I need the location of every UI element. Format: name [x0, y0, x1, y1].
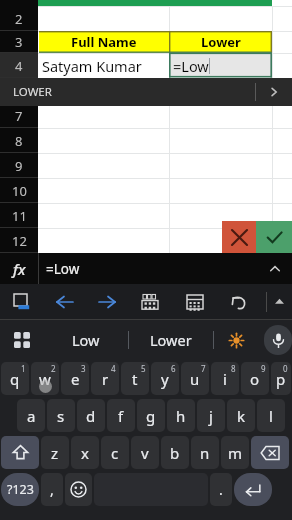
button[interactable]: 4	[0, 53, 38, 78]
button[interactable]: Enter	[234, 473, 272, 506]
staticText: ?123	[7, 481, 34, 498]
button[interactable]: d	[77, 399, 105, 432]
button[interactable]: Emoji	[65, 473, 92, 506]
staticText: g	[146, 406, 156, 426]
button[interactable]: a	[17, 399, 45, 432]
staticText: s	[57, 406, 65, 426]
button[interactable]: LOWER	[0, 78, 292, 106]
button[interactable]: Backspace	[251, 436, 289, 469]
staticText: p	[276, 369, 286, 389]
button[interactable]: Expand formula bar	[258, 253, 292, 284]
staticText: Satyam Kumar	[42, 56, 142, 76]
button[interactable]: Period	[210, 473, 232, 506]
button[interactable]: e	[61, 362, 89, 395]
button[interactable]: Lower	[129, 320, 213, 360]
button[interactable]: v	[131, 436, 159, 469]
button[interactable]: Previous	[44, 284, 86, 319]
staticText: b	[170, 443, 180, 463]
staticText: o	[250, 369, 260, 389]
button[interactable]: Satyam Kumar	[39, 54, 169, 77]
button[interactable]: Voice input	[264, 325, 292, 355]
staticText: 9	[15, 157, 23, 175]
staticText: Low	[72, 330, 100, 350]
button[interactable]: Low	[44, 320, 128, 360]
staticText: Lower	[150, 330, 192, 350]
staticText: 4	[15, 57, 23, 75]
button[interactable]: Full Name	[39, 32, 169, 52]
button[interactable]: k	[227, 399, 255, 432]
staticText: 1	[21, 363, 26, 374]
button[interactable]: 5	[0, 78, 38, 103]
button[interactable]: Confirm	[256, 221, 292, 253]
button[interactable]: g	[137, 399, 165, 432]
button[interactable]: l	[257, 399, 285, 432]
button[interactable]: y	[151, 362, 179, 395]
staticText: 12	[12, 232, 27, 250]
button[interactable]: t	[121, 362, 149, 395]
staticText: n	[200, 443, 210, 463]
button[interactable]: Cancel	[222, 221, 256, 253]
button[interactable]: Comma	[41, 473, 63, 506]
staticText: f	[118, 406, 124, 426]
button[interactable]: 7	[0, 103, 38, 128]
button[interactable]: j	[197, 399, 225, 432]
staticText: LOWER	[13, 84, 52, 100]
staticText: .	[219, 480, 223, 499]
button[interactable]: ?123	[1, 473, 39, 506]
staticText: t	[132, 369, 138, 389]
staticText: =Low	[46, 260, 80, 278]
button[interactable]: Undo	[218, 284, 262, 319]
button[interactable]: x	[71, 436, 99, 469]
button[interactable]: Date	[172, 284, 218, 319]
button[interactable]: Toggle keyboard	[0, 284, 44, 319]
staticText: d	[86, 406, 96, 426]
button[interactable]: Settings	[214, 320, 258, 360]
button[interactable]: p	[271, 362, 291, 395]
staticText: 7	[15, 107, 23, 125]
staticText: =Low	[173, 56, 209, 76]
button[interactable]: m	[221, 436, 249, 469]
staticText: w	[39, 369, 51, 389]
button[interactable]: 2	[0, 6, 38, 31]
button[interactable]: h	[167, 399, 195, 432]
staticText: Full Name	[71, 33, 137, 51]
staticText: l	[269, 406, 273, 426]
button[interactable]: 12	[0, 228, 38, 253]
button[interactable]: i	[211, 362, 239, 395]
button[interactable]: Lower	[170, 32, 272, 52]
staticText: q	[10, 369, 20, 389]
button[interactable]: Number pad	[128, 284, 172, 319]
button[interactable]: o	[241, 362, 269, 395]
button[interactable]: Clipboard	[0, 320, 44, 360]
button[interactable]: 11	[0, 203, 38, 228]
button[interactable]: 8	[0, 128, 38, 153]
staticText: u	[190, 369, 200, 389]
button[interactable]: b	[161, 436, 189, 469]
button[interactable]: q	[1, 362, 29, 395]
button[interactable]: 10	[0, 178, 38, 203]
button[interactable]: 3	[0, 31, 38, 53]
button[interactable]: Collapse	[267, 284, 292, 319]
button[interactable]: n	[191, 436, 219, 469]
button[interactable]: u	[181, 362, 209, 395]
button[interactable]: Next	[86, 284, 128, 319]
button[interactable]: c	[101, 436, 129, 469]
button[interactable]: s	[47, 399, 75, 432]
staticText: h	[176, 406, 186, 426]
button[interactable]: =Low	[170, 54, 272, 77]
staticText: 3	[81, 363, 86, 374]
staticText: fx	[13, 259, 26, 279]
staticText: 9	[261, 363, 266, 374]
button[interactable]: z	[41, 436, 69, 469]
button[interactable]: r	[91, 362, 119, 395]
button[interactable]: Shift	[1, 436, 39, 469]
staticText: k	[237, 406, 246, 426]
staticText: 6	[171, 363, 176, 374]
button[interactable]: f	[107, 399, 135, 432]
button[interactable]: 9	[0, 153, 38, 178]
staticText: j	[209, 406, 213, 426]
button[interactable]: More about LOWER	[256, 78, 292, 106]
staticText: 7	[201, 363, 206, 374]
button[interactable]: w	[31, 362, 59, 395]
